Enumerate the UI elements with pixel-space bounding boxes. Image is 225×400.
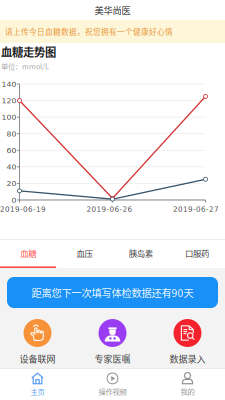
staticText: 2019-06-26 (86, 205, 132, 213)
staticText: 设备联网 (19, 352, 55, 365)
staticText: 80 (6, 129, 16, 138)
button[interactable]: 专家医嘱 (75, 319, 150, 365)
button[interactable]: 口服药 (169, 240, 225, 268)
staticText: 单位：mmol/L (1, 61, 49, 71)
staticText: 请上传今日血糖数据，祝您拥有一个健康好心情 (5, 26, 173, 37)
staticText: 血糖走势图 (1, 43, 56, 60)
button[interactable]: 血糖 (0, 240, 56, 268)
staticText: 距离您下一次填写体检数据还有90天 (31, 285, 193, 300)
staticText: 血糖 (20, 247, 36, 259)
button[interactable]: 距离您下一次填写体检数据还有90天 (7, 277, 218, 308)
staticText: 100 (1, 113, 16, 122)
button[interactable]: 我的 (150, 369, 225, 400)
staticText: 20 (6, 179, 16, 188)
staticText: 口服药 (185, 247, 209, 259)
staticText: 操作视频 (98, 386, 126, 396)
button[interactable]: 操作视频 (75, 369, 150, 400)
staticText: 数据录入 (169, 352, 205, 365)
staticText: 美华尚医 (94, 3, 130, 17)
button[interactable]: 胰岛素 (112, 240, 169, 268)
staticText: 专家医嘱 (94, 352, 130, 365)
staticText: 60 (6, 146, 16, 155)
button[interactable]: 主页 (0, 369, 75, 400)
staticText: 我的 (180, 386, 194, 396)
button[interactable]: 血压 (56, 240, 112, 268)
staticText: 血压 (76, 247, 92, 259)
staticText: 40 (6, 162, 16, 171)
staticText: 2019-06-27 (173, 205, 219, 213)
staticText: 主页 (30, 386, 44, 396)
staticText: 140 (1, 79, 16, 88)
staticText: 2019-06-19 (0, 205, 46, 213)
staticText: 0 (11, 195, 16, 204)
staticText: 120 (1, 96, 16, 105)
button[interactable]: 数据录入 (150, 319, 225, 365)
button[interactable]: 设备联网 (0, 319, 75, 365)
staticText: 胰岛素 (129, 247, 153, 259)
